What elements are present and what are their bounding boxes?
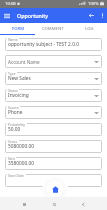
staticText: Opportunity bbox=[17, 12, 49, 19]
staticText: 10:08 bbox=[5, 1, 16, 7]
button[interactable]: Home bbox=[46, 180, 64, 198]
button[interactable]: New Sales bbox=[5, 72, 102, 85]
button[interactable]: Open navigation menu bbox=[0, 8, 14, 23]
staticText: Type bbox=[8, 71, 16, 76]
button[interactable]: Back bbox=[85, 8, 97, 23]
staticText: Invoicing bbox=[8, 92, 29, 99]
staticText: FORM bbox=[12, 26, 24, 32]
button[interactable]: Invoicing bbox=[5, 89, 102, 102]
staticText: Status bbox=[8, 88, 18, 93]
button[interactable]: 50.00 bbox=[5, 123, 102, 136]
button[interactable]: FORM bbox=[0, 23, 35, 35]
staticText: Nett bbox=[8, 156, 15, 161]
staticText: Gross bbox=[8, 139, 18, 144]
staticText: 3580000.00 bbox=[8, 160, 34, 167]
button[interactable]: opportunity subject - TEST 2.0.0 bbox=[5, 38, 102, 51]
button[interactable] bbox=[5, 174, 102, 187]
button[interactable]: Account Name bbox=[5, 55, 102, 68]
button[interactable]: Recent apps bbox=[18, 198, 30, 210]
staticText: Probability bbox=[8, 122, 26, 127]
button[interactable]: 5080000.00 bbox=[5, 140, 102, 153]
staticText: 50.00 bbox=[8, 126, 21, 133]
button[interactable]: 3580000.00 bbox=[5, 157, 102, 170]
staticText: Name bbox=[8, 37, 18, 42]
staticText: New Sales bbox=[8, 75, 31, 82]
staticText: opportunity subject - TEST 2.0.0 bbox=[8, 41, 79, 48]
staticText: Phone bbox=[8, 109, 23, 116]
button[interactable]: COMMENT bbox=[35, 23, 71, 35]
button[interactable]: Phone bbox=[5, 106, 102, 119]
staticText: Start Date bbox=[8, 173, 25, 178]
staticText: COMMENT bbox=[42, 26, 64, 32]
button[interactable]: Home bbox=[48, 198, 60, 210]
staticText: 100% bbox=[88, 1, 99, 7]
staticText: LOG bbox=[85, 26, 94, 32]
button[interactable]: Back bbox=[77, 198, 89, 210]
staticText: Account Name bbox=[8, 59, 40, 65]
staticText: 5080000.00 bbox=[8, 143, 34, 150]
button[interactable]: More options bbox=[97, 8, 107, 23]
button[interactable]: LOG bbox=[71, 23, 107, 35]
staticText: Source bbox=[8, 105, 19, 110]
